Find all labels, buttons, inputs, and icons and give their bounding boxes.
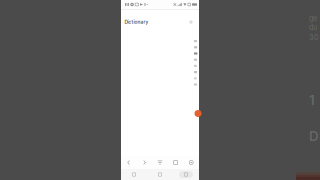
button[interactable]: Home (152, 156, 168, 169)
staticText: du (309, 23, 317, 32)
staticText: 30 (309, 33, 319, 42)
button[interactable]: Back (121, 156, 137, 169)
staticText: ge (309, 14, 317, 23)
button[interactable]: Menu (183, 156, 199, 169)
staticText: Dictionary (124, 19, 148, 25)
button[interactable]: Recents (121, 169, 147, 180)
button[interactable]: Tabs (168, 156, 183, 169)
button[interactable]: Home (147, 169, 173, 180)
button[interactable]: Back (173, 169, 199, 180)
staticText: D (309, 128, 319, 144)
staticText: 1 (309, 92, 315, 108)
button[interactable]: Forward (137, 156, 152, 169)
button[interactable]: Search (186, 18, 195, 27)
